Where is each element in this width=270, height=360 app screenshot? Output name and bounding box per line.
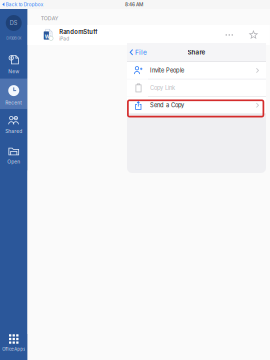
staticText: Send a Copy xyxy=(150,102,184,109)
button[interactable]: Shared xyxy=(0,109,27,140)
button[interactable]: Recent xyxy=(0,79,27,109)
staticText: Back to Dropbox xyxy=(6,2,44,7)
button[interactable]: Back to Dropbox xyxy=(0,0,44,9)
staticText: Copy Link xyxy=(150,84,175,91)
staticText: Shared xyxy=(5,128,22,134)
staticText: DS xyxy=(10,20,18,26)
staticText: W xyxy=(45,34,50,40)
button[interactable]: W xyxy=(28,25,270,45)
button[interactable]: Invite People xyxy=(127,62,266,79)
button[interactable]: Copy Link xyxy=(127,79,266,96)
staticText: RandomStuff xyxy=(59,28,97,35)
staticText: Invite People xyxy=(150,67,184,74)
staticText: iPad xyxy=(59,36,69,42)
staticText: Recent xyxy=(5,100,22,106)
staticText: File xyxy=(135,48,147,56)
button[interactable]: DS xyxy=(0,9,27,48)
staticText: Share xyxy=(187,48,205,56)
staticText: Open xyxy=(7,159,20,165)
button[interactable]: Send a Copy xyxy=(127,97,266,114)
button[interactable]: Office Apps xyxy=(0,334,27,352)
staticText: 8:46 AM xyxy=(125,2,143,7)
staticText: TODAY xyxy=(41,15,59,21)
button[interactable]: New xyxy=(0,48,27,79)
staticText: Office Apps xyxy=(2,347,25,352)
staticText: DropBox xyxy=(6,35,21,40)
button[interactable]: File xyxy=(127,43,147,61)
staticText: New xyxy=(8,68,19,74)
button[interactable]: Open xyxy=(0,140,27,170)
